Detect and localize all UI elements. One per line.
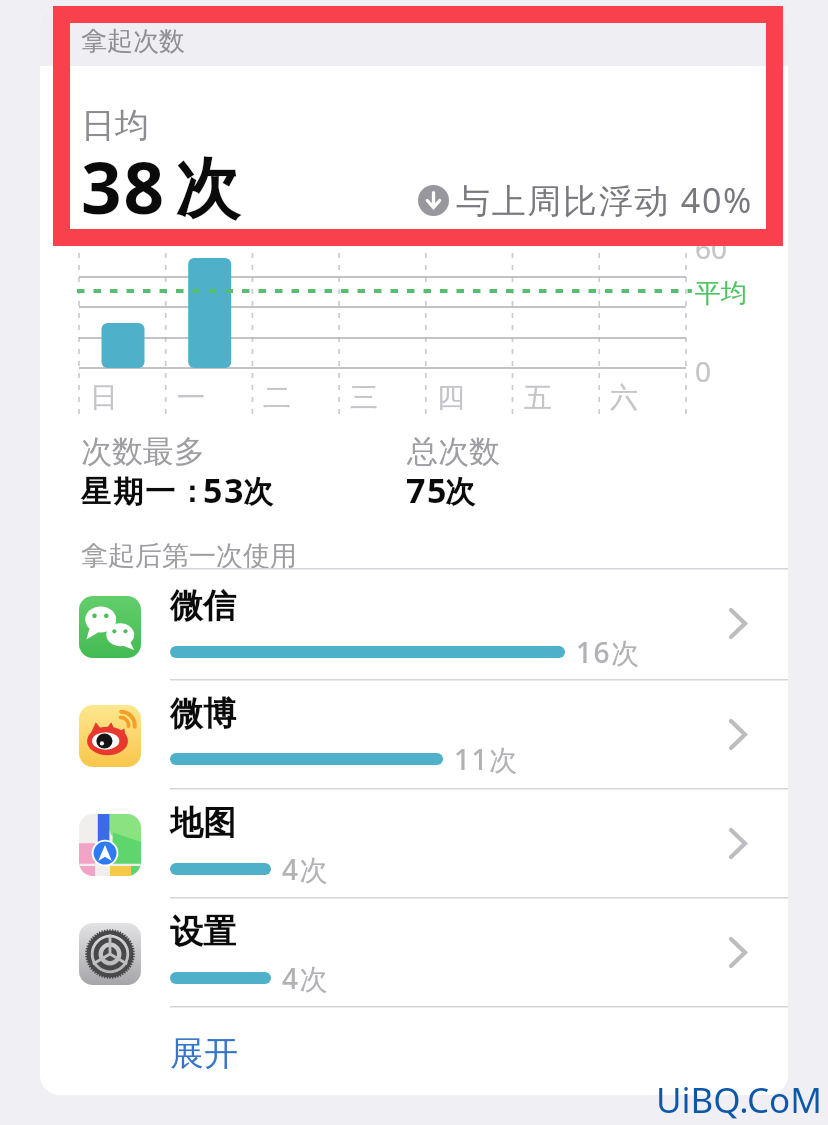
staticText: 16次 bbox=[576, 633, 641, 671]
staticText: 拿起后第一次使用 bbox=[81, 539, 297, 573]
staticText: 微信 bbox=[170, 585, 236, 627]
staticText: 次 bbox=[243, 473, 273, 511]
staticText: 日均 bbox=[81, 104, 149, 147]
staticText: 60 bbox=[695, 229, 728, 267]
button[interactable]: 地图 bbox=[40, 788, 788, 898]
other: 查看详情 bbox=[728, 937, 748, 968]
staticText: 次数最多 bbox=[81, 432, 205, 471]
button[interactable]: 展开 bbox=[40, 1006, 788, 1091]
staticText: 4次 bbox=[282, 850, 330, 888]
other: 查看详情 bbox=[728, 608, 748, 639]
staticText: 次 bbox=[175, 148, 240, 230]
staticText: 四 bbox=[437, 380, 465, 415]
staticText: UiBQ.CoM bbox=[656, 1076, 822, 1124]
staticText: 75 bbox=[406, 467, 448, 513]
staticText: 五 bbox=[524, 380, 552, 415]
staticText: 二 bbox=[263, 380, 291, 415]
staticText: 53 bbox=[203, 467, 245, 513]
staticText: 设置 bbox=[170, 911, 236, 953]
staticText: 一 bbox=[177, 380, 205, 415]
staticText: 与上周比浮动 40% bbox=[456, 177, 753, 223]
staticText: 总次数 bbox=[407, 432, 500, 471]
staticText: 0 bbox=[695, 352, 712, 390]
button[interactable]: 微博 bbox=[40, 679, 788, 789]
staticText: 星期一： bbox=[80, 473, 208, 511]
staticText: 次 bbox=[445, 473, 475, 511]
staticText: 微博 bbox=[170, 693, 236, 735]
staticText: 38 bbox=[81, 138, 167, 235]
other: 查看详情 bbox=[728, 719, 748, 750]
staticText: 三 bbox=[350, 380, 378, 415]
staticText: 平均 bbox=[695, 277, 747, 310]
staticText: 4次 bbox=[282, 959, 330, 997]
staticText: 六 bbox=[610, 380, 638, 415]
other: 查看详情 bbox=[728, 828, 748, 859]
staticText: 地图 bbox=[170, 802, 236, 844]
staticText: 拿起次数 bbox=[81, 25, 185, 58]
staticText: 展开 bbox=[170, 1032, 238, 1075]
staticText: 11次 bbox=[454, 740, 519, 778]
button[interactable]: 微信 bbox=[40, 568, 788, 678]
button[interactable]: 设置 bbox=[40, 897, 788, 1007]
staticText: 日 bbox=[90, 380, 118, 415]
